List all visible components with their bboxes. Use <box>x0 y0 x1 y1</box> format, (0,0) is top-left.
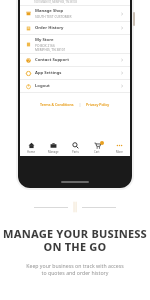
staticText: Contact Support <box>35 57 70 63</box>
staticText: Terms & Conditions <box>40 102 74 107</box>
staticText: Parts <box>72 150 79 154</box>
button[interactable]: Privacy Policy <box>84 101 112 108</box>
button[interactable]: Manage <box>42 140 64 156</box>
button[interactable]: More <box>108 140 130 156</box>
staticText: Privacy Policy <box>86 102 110 107</box>
button[interactable]: Cart <box>86 140 108 156</box>
staticText: App Settings <box>35 70 62 76</box>
staticText: Keep your business on track with access … <box>14 262 136 277</box>
button[interactable]: Manage Shop <box>20 6 130 21</box>
button[interactable]: App Settings <box>20 67 130 79</box>
button[interactable]: Logout <box>20 80 130 92</box>
button[interactable]: My Store <box>20 35 130 53</box>
button[interactable]: Contact Support <box>20 54 130 66</box>
button[interactable]: Order History <box>20 22 130 34</box>
staticText: | <box>79 102 81 107</box>
staticText: My Store <box>35 37 54 43</box>
button[interactable]: Home <box>20 140 42 156</box>
staticText: Logout <box>35 83 50 89</box>
staticText: MANAGE YOUR BUSINESS ON THE GO <box>0 226 150 254</box>
staticText: SOUTH TEST CUSTOMER <box>35 15 72 19</box>
staticText: Manage <box>48 150 59 154</box>
staticText: More <box>116 150 123 154</box>
staticText: 1001 MAIN ST, MEMPHIS, TN 38103 <box>34 0 78 4</box>
button[interactable]: Parts <box>64 140 86 156</box>
button[interactable]: Terms & Conditions <box>38 101 76 108</box>
staticText: PO BOX 2166 MEMPHIS, TN 38101 <box>35 44 66 52</box>
staticText: Home <box>27 150 35 154</box>
staticText: Order History <box>35 25 64 31</box>
staticText: Cart <box>94 150 100 154</box>
staticText: Manage Shop <box>35 8 64 14</box>
